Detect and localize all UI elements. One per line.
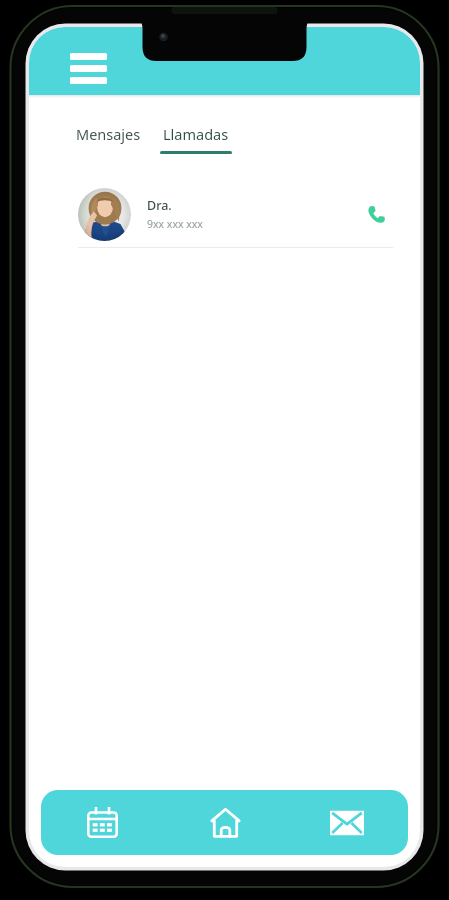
button[interactable]: Home xyxy=(164,790,286,855)
button[interactable]: Mensajes xyxy=(74,122,143,146)
staticText: 9xx xxx xxx xyxy=(147,217,203,231)
button[interactable]: Dra. xyxy=(78,181,393,247)
button[interactable]: Call Dra. xyxy=(359,197,393,231)
button[interactable]: Open menu xyxy=(69,47,107,85)
button[interactable]: Calendar xyxy=(41,790,164,855)
staticText: Llamadas xyxy=(163,124,229,144)
button[interactable]: Llamadas xyxy=(160,122,232,154)
staticText: Mensajes xyxy=(76,124,141,144)
button[interactable]: Messages xyxy=(286,790,408,855)
staticText: Dra. xyxy=(147,197,172,214)
